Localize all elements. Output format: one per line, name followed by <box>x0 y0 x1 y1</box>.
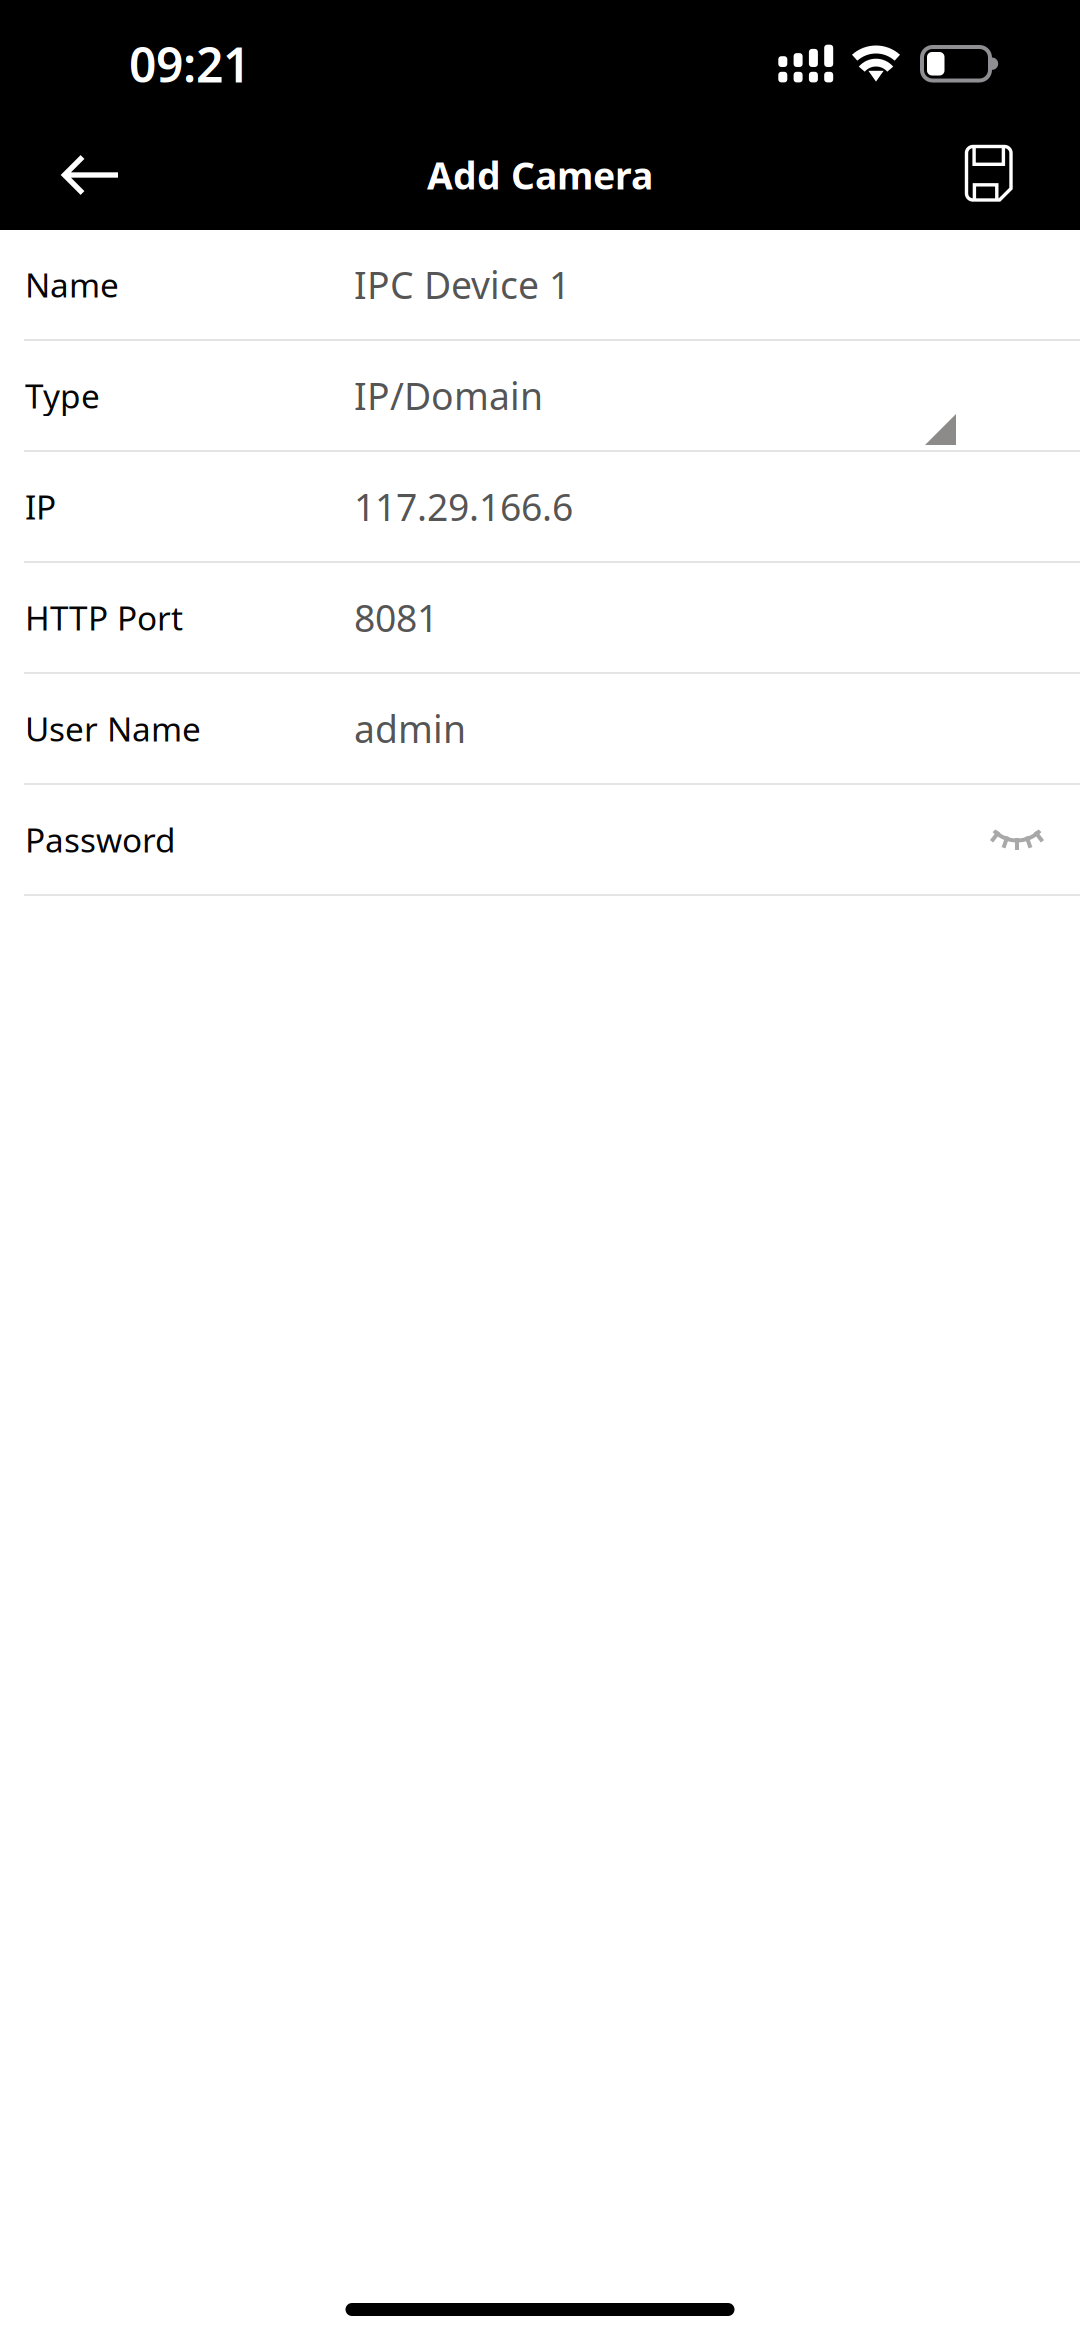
button[interactable]: Save <box>935 125 1045 225</box>
button[interactable]: Type <box>0 341 1080 450</box>
staticText: IP/Domain <box>354 371 543 420</box>
button[interactable]: Password <box>0 785 1080 894</box>
button[interactable]: Name <box>0 230 1080 339</box>
staticText: Type <box>25 373 100 418</box>
button[interactable]: HTTP Port <box>0 563 1080 672</box>
staticText: 8081 <box>354 593 438 642</box>
staticText: HTTP Port <box>25 595 183 640</box>
button[interactable]: Show password <box>961 794 1071 884</box>
staticText: Name <box>25 262 119 307</box>
button[interactable]: Back <box>40 125 150 225</box>
staticText: Password <box>25 817 176 862</box>
button[interactable]: User Name <box>0 674 1080 783</box>
staticText: Add Camera <box>427 150 653 200</box>
staticText: admin <box>354 704 466 753</box>
staticText: IP <box>25 484 56 529</box>
staticText: IPC Device 1 <box>354 260 570 309</box>
staticText: User Name <box>25 706 201 751</box>
staticText: 09:21 <box>129 32 250 96</box>
button[interactable]: IP <box>0 452 1080 561</box>
staticText: 117.29.166.6 <box>354 482 573 531</box>
